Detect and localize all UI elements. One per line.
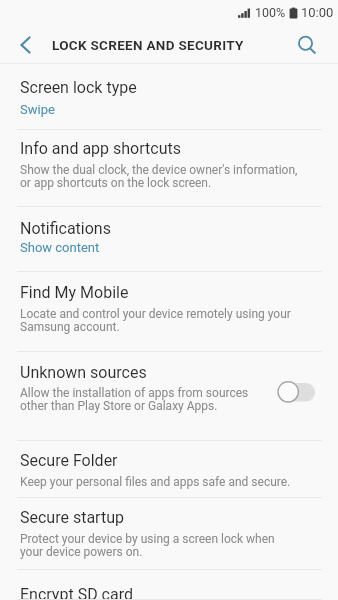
staticText: Unknown sources: [20, 363, 147, 382]
button[interactable]: Screen lock type: [0, 64, 338, 130]
button[interactable]: Find My Mobile: [0, 272, 338, 352]
button[interactable]: Notifications: [0, 207, 338, 272]
staticText: Keep your personal files and apps safe a…: [20, 475, 291, 489]
staticText: Allow the installation of apps from sour…: [20, 386, 249, 413]
button[interactable]: [292, 30, 322, 60]
staticText: Swipe: [20, 102, 55, 117]
staticText: Screen lock type: [20, 78, 137, 97]
staticText: Show content: [20, 240, 100, 255]
button[interactable]: [10, 30, 40, 60]
button[interactable]: Secure Folder: [0, 441, 338, 498]
staticText: 10:00: [301, 5, 334, 20]
staticText: Info and app shortcuts: [20, 139, 181, 158]
button[interactable]: Info and app shortcuts: [0, 130, 338, 207]
staticText: Encrypt SD card: [20, 585, 133, 600]
button[interactable]: Unknown sources: [0, 352, 338, 441]
button[interactable]: Secure startup: [0, 498, 338, 570]
staticText: LOCK SCREEN AND SECURITY: [52, 37, 244, 53]
staticText: 100%: [255, 5, 286, 20]
staticText: Secure Folder: [20, 451, 118, 470]
staticText: Protect your device by using a screen lo…: [20, 532, 275, 559]
staticText: Show the dual clock, the device owner's …: [20, 163, 298, 190]
staticText: Secure startup: [20, 508, 124, 527]
staticText: Locate and control your device remotely …: [20, 307, 291, 334]
staticText: Notifications: [20, 219, 111, 238]
button[interactable]: Encrypt SD card: [0, 570, 338, 600]
staticText: Find My Mobile: [20, 283, 129, 302]
